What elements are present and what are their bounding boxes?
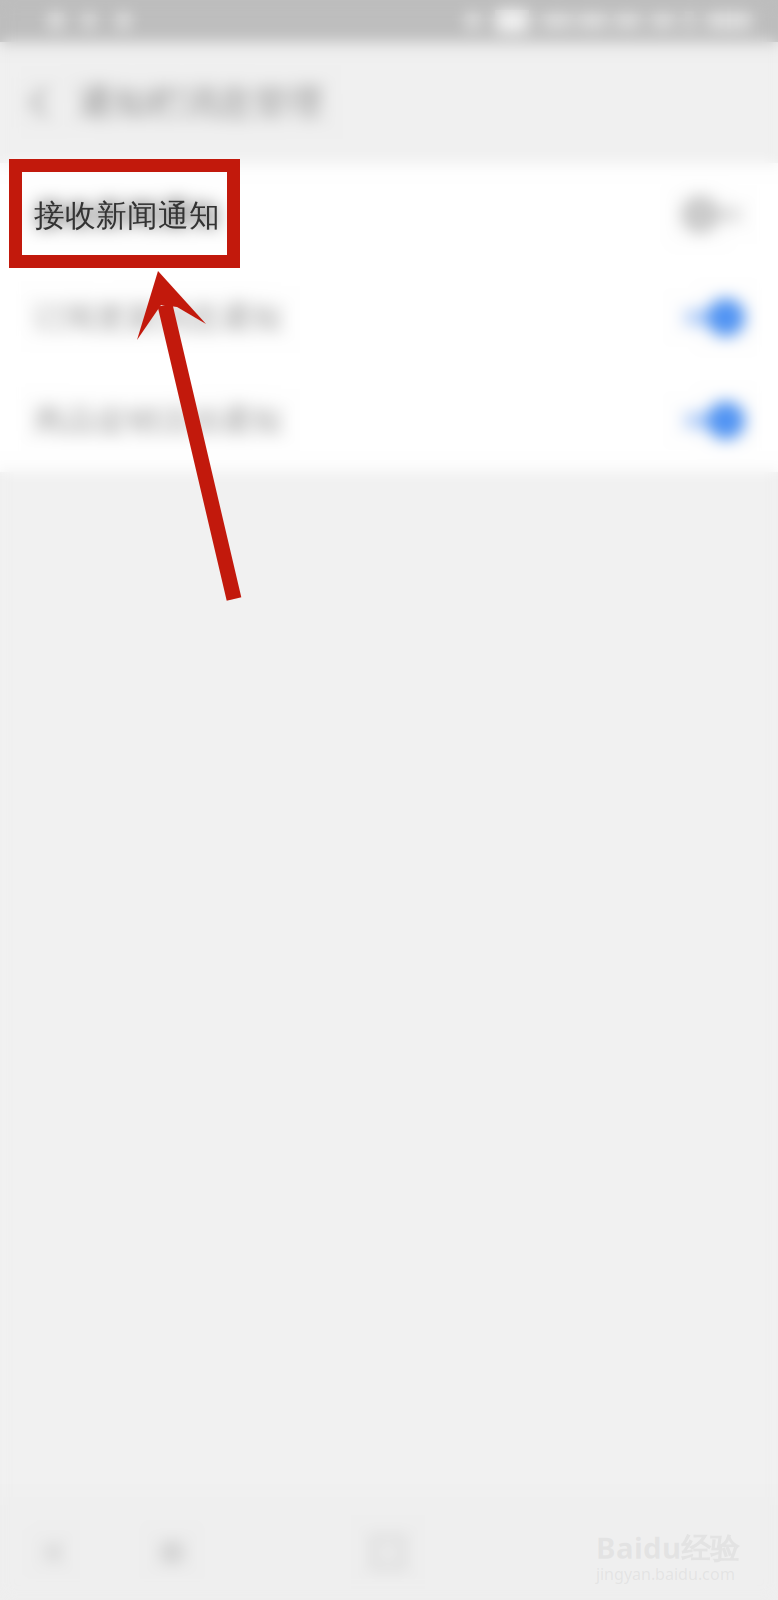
button[interactable]: Back	[0, 42, 78, 163]
button[interactable]: 商品促销活动通知	[0, 369, 778, 472]
staticText: 商品促销活动通知	[34, 402, 282, 439]
button[interactable]: 订阅更新消息通知	[0, 266, 778, 369]
staticText: 订阅更新消息通知	[34, 299, 282, 336]
staticText: Baidu经验	[596, 1528, 739, 1567]
staticText: 接收新闻通知	[34, 197, 220, 235]
staticText: 接收新闻通知	[34, 196, 220, 233]
staticText: jingyan.baidu.com	[596, 1563, 735, 1584]
button[interactable]: 接收新闻通知	[0, 163, 778, 266]
staticText: 通知栏消息管理	[78, 81, 323, 124]
button[interactable]: Home	[102, 1505, 242, 1600]
